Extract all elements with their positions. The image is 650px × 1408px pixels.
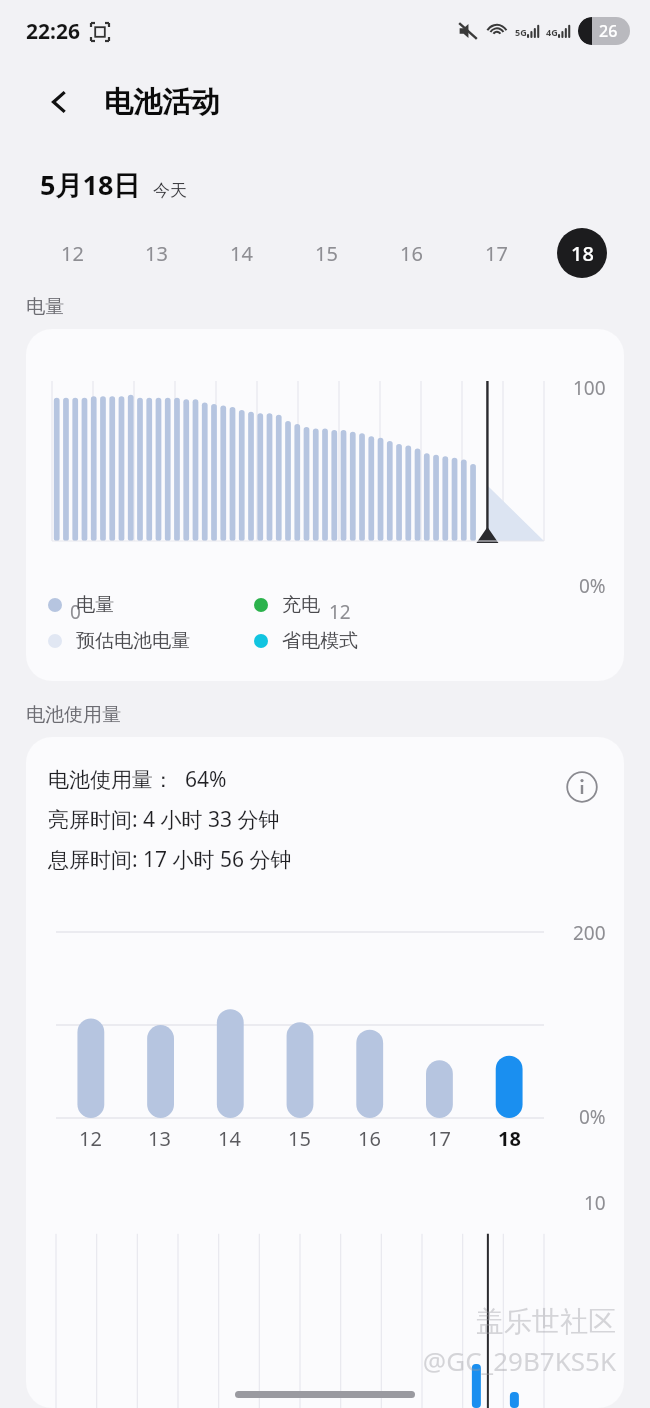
staticText: 充电: [282, 593, 320, 617]
button[interactable]: 15: [284, 225, 369, 281]
staticText: 息屏时间: 17 小时 56 分钟: [48, 845, 292, 874]
staticText: 15: [315, 240, 338, 267]
staticText: 14: [230, 240, 253, 267]
staticText: 预估电池电量: [76, 629, 190, 653]
staticText: 100: [573, 375, 606, 401]
staticText: 22:26: [26, 17, 80, 46]
staticText: 12: [329, 599, 351, 625]
staticText: 13: [148, 1125, 171, 1152]
button[interactable]: 14: [199, 225, 284, 281]
staticText: 电量: [76, 593, 114, 617]
staticText: 电量: [26, 295, 64, 319]
staticText: 12: [79, 1125, 102, 1152]
staticText: 0%: [579, 1104, 606, 1130]
button[interactable]: 17: [454, 225, 539, 281]
staticText: 26: [599, 20, 618, 42]
staticText: 200: [573, 920, 606, 946]
staticText: 5月18日: [40, 166, 141, 203]
staticText: 16: [358, 1125, 381, 1152]
staticText: 12: [61, 240, 84, 267]
button[interactable]: 13: [114, 225, 199, 281]
staticText: 18: [498, 1125, 521, 1152]
staticText: 今天: [153, 180, 187, 201]
button[interactable]: 12: [30, 225, 114, 281]
staticText: 13: [145, 240, 168, 267]
staticText: 0: [70, 599, 81, 625]
staticText: 16: [400, 240, 423, 267]
button[interactable]: Info: [562, 767, 602, 807]
button[interactable]: 16: [369, 225, 454, 281]
staticText: 盖乐世社区: [476, 1304, 616, 1339]
staticText: 15: [288, 1125, 311, 1152]
staticText: 电池使用量： 64%: [48, 765, 227, 794]
staticText: 省电模式: [282, 629, 358, 653]
button[interactable]: 18: [539, 225, 624, 281]
staticText: 17: [428, 1125, 451, 1152]
staticText: 18: [571, 240, 594, 267]
staticText: @GC_29B7KS5K: [422, 1343, 616, 1378]
staticText: 10: [584, 1190, 606, 1216]
button[interactable]: Back: [38, 80, 82, 124]
staticText: 0%: [579, 573, 606, 599]
staticText: 5G: [515, 26, 527, 38]
staticText: 亮屏时间: 4 小时 33 分钟: [48, 805, 280, 834]
staticText: 14: [218, 1125, 241, 1152]
button[interactable]: 100: [26, 329, 624, 681]
staticText: 电池使用量: [26, 703, 121, 727]
staticText: 17: [485, 240, 508, 267]
staticText: 4G: [546, 26, 558, 38]
staticText: 电池活动: [104, 84, 220, 121]
